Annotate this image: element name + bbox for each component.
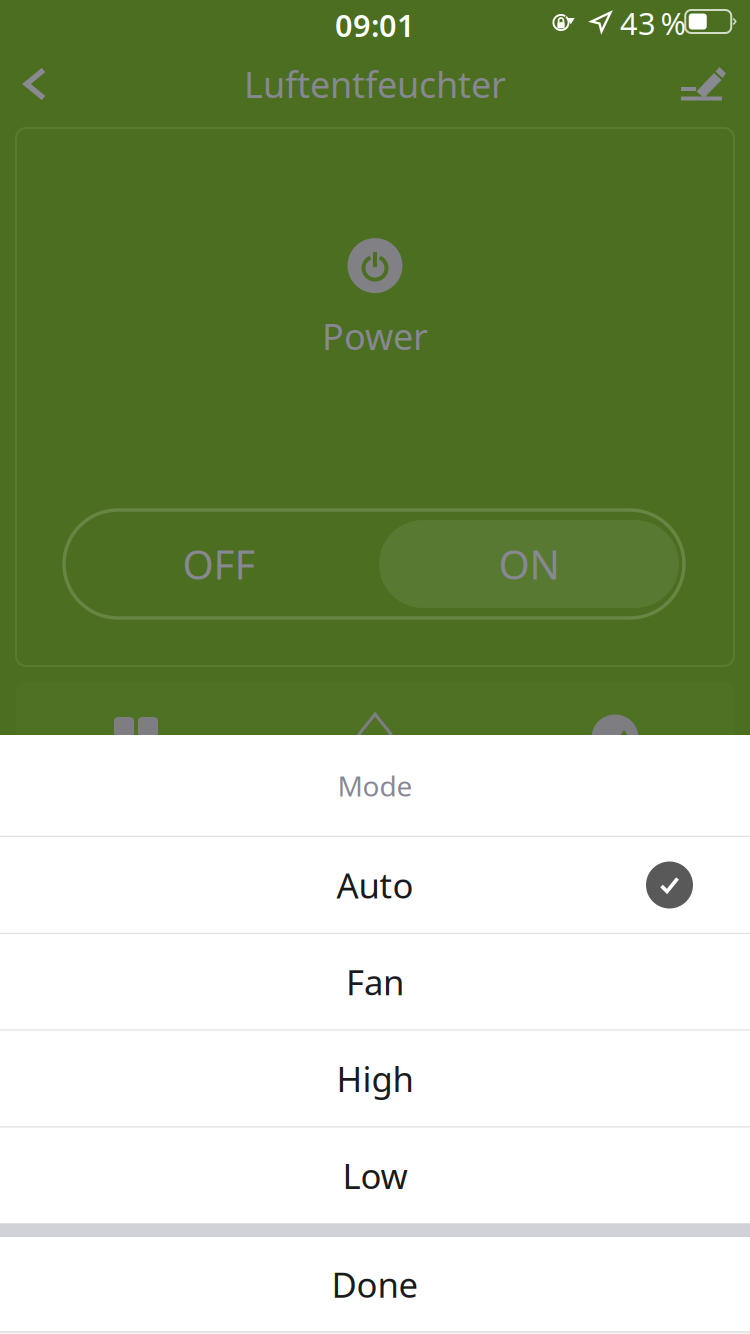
button[interactable]: High	[0, 1031, 750, 1126]
staticText: 09:01	[335, 5, 415, 45]
button[interactable]: Power	[282, 239, 468, 359]
staticText: %	[660, 3, 685, 43]
staticText: Low	[342, 1152, 407, 1198]
staticText: Mode	[337, 767, 412, 804]
staticText: Done	[331, 1261, 418, 1307]
button[interactable]: ON	[374, 510, 684, 618]
button[interactable]: Fan	[0, 934, 750, 1029]
button[interactable]: Done	[0, 1237, 750, 1331]
staticText: Power	[322, 312, 428, 360]
staticText: Auto	[336, 862, 413, 908]
button[interactable]: Edit	[666, 49, 741, 119]
button[interactable]: Auto	[0, 837, 750, 933]
button[interactable]: Back	[0, 49, 70, 119]
staticText: OFF	[182, 537, 255, 590]
staticText: Luftentfeuchter	[244, 60, 506, 108]
button[interactable]: Low	[0, 1128, 750, 1223]
staticText: High	[336, 1055, 413, 1101]
staticText: Fan	[346, 959, 404, 1005]
staticText: 43	[620, 3, 656, 43]
staticText: ON	[498, 537, 559, 590]
button[interactable]: OFF	[64, 510, 374, 618]
